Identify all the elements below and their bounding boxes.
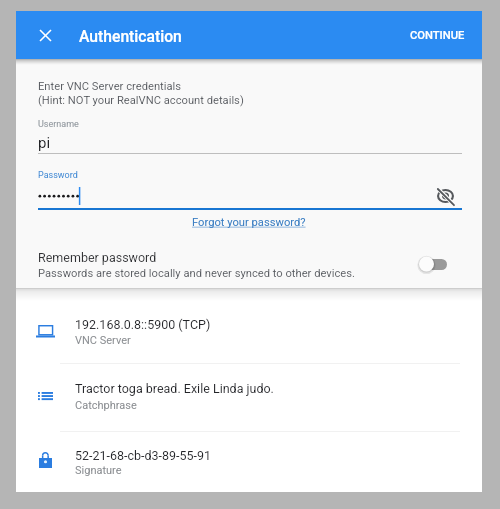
staticText: CONTINUE [410, 29, 465, 42]
staticText: Enter VNC Server credentials [38, 80, 182, 93]
staticText: Username [38, 119, 79, 130]
button[interactable]: CONTINUE [401, 11, 473, 59]
staticText: 192.168.0.8::5900 (TCP) [75, 317, 211, 332]
button[interactable]: Show password [423, 174, 467, 218]
staticText: Tractor toga bread. Exile Linda judo. [75, 381, 274, 396]
button[interactable]: Close [21, 11, 69, 59]
staticText: pi [38, 134, 51, 152]
staticText: Password [38, 170, 78, 181]
staticText: VNC Server [75, 334, 131, 347]
staticText: Remember password [38, 250, 157, 265]
button[interactable]: Signature [16, 432, 482, 498]
button[interactable]: Catchphrase [16, 364, 482, 430]
button[interactable]: VNC Server address [16, 300, 482, 366]
button[interactable]: Remember password toggle [412, 244, 460, 284]
staticText: Forgot your password? [192, 216, 306, 229]
staticText: Signature [75, 464, 122, 477]
staticText: Passwords are stored locally and never s… [38, 267, 355, 280]
staticText: Authentication [79, 27, 182, 45]
button[interactable]: Forgot your password? [188, 212, 310, 233]
staticText: Catchphrase [75, 399, 137, 412]
staticText: 52-21-68-cb-d3-89-55-91 [75, 448, 212, 463]
staticText: (Hint: NOT your RealVNC account details) [38, 94, 244, 107]
